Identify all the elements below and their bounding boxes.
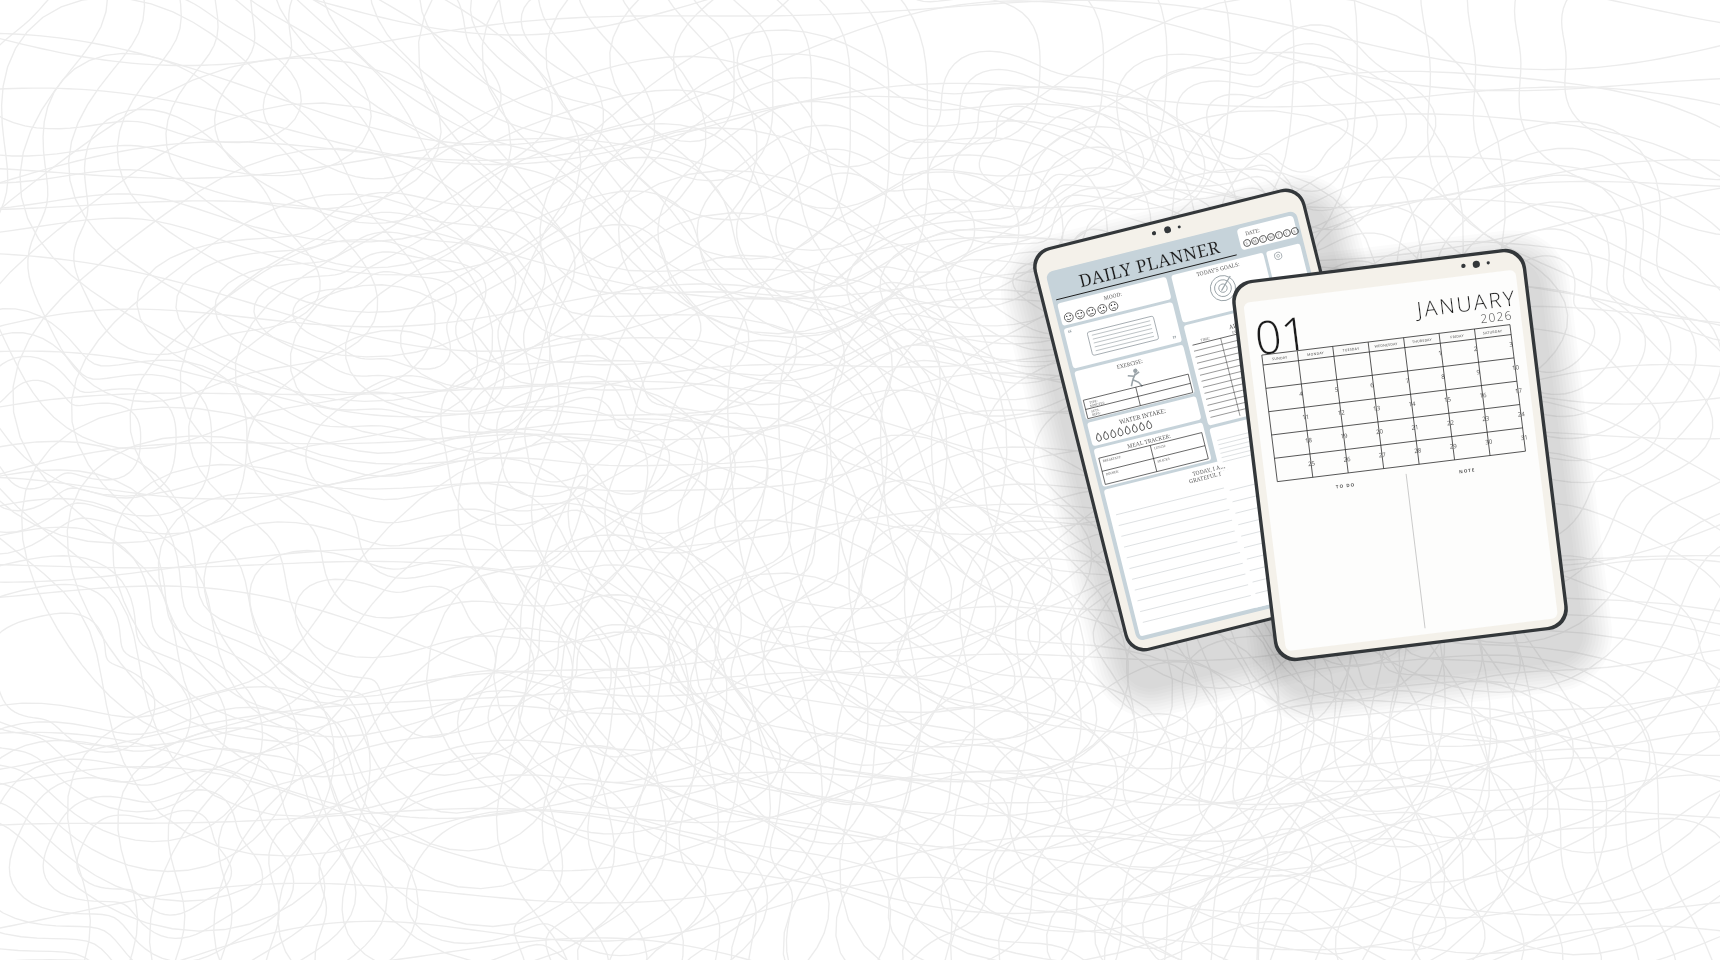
button[interactable]: Digital planner and calendar tablet mock… [0,0,1720,960]
